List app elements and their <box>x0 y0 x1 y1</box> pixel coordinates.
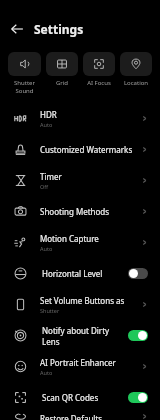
button[interactable]: HDR <box>0 103 160 134</box>
staticText: Motion Capture <box>40 233 99 244</box>
button[interactable]: Shooting Methods <box>0 196 160 227</box>
staticText: HDR <box>40 109 57 120</box>
staticText: AI Portrait Enhancer <box>40 357 116 368</box>
staticText: Scan QR Codes <box>42 392 128 403</box>
staticText: Settings <box>34 21 84 37</box>
button[interactable]: Restore Defaults <box>0 413 160 420</box>
staticText: Off <box>40 183 49 190</box>
button[interactable]: Back <box>0 14 34 44</box>
staticText: Customized Watermarks <box>40 144 133 155</box>
staticText: Auto <box>40 369 53 376</box>
button[interactable]: Location <box>120 52 152 87</box>
button[interactable]: AI Focus <box>83 52 115 87</box>
button[interactable]: Set Volume Buttons as <box>0 289 160 320</box>
staticText: Horizontal Level <box>42 268 128 279</box>
staticText: Set Volume Buttons as <box>40 295 125 306</box>
button[interactable]: Grid <box>46 52 78 87</box>
staticText: Notify about Dirty Lens <box>42 325 128 347</box>
staticText: Restore Defaults <box>40 413 103 420</box>
button[interactable]: Scan QR Codes <box>0 382 160 413</box>
button[interactable]: Customized Watermarks <box>0 134 160 165</box>
staticText: Auto <box>40 245 53 252</box>
button[interactable]: Horizontal Level <box>0 258 160 289</box>
button[interactable]: Timer <box>0 165 160 196</box>
button[interactable]: AI Portrait Enhancer <box>0 351 160 382</box>
staticText: Shutter Sound <box>8 79 41 95</box>
button[interactable]: Shutter Sound <box>8 52 41 95</box>
staticText: Grid <box>46 79 78 87</box>
button[interactable]: Motion Capture <box>0 227 160 258</box>
button[interactable]: Notify about Dirty Lens <box>0 320 160 351</box>
staticText: Shutter <box>40 307 60 314</box>
staticText: Auto <box>40 121 53 128</box>
staticText: Location <box>120 79 152 87</box>
staticText: Shooting Methods <box>40 206 110 217</box>
staticText: AI Focus <box>83 79 115 87</box>
staticText: Timer <box>40 171 62 182</box>
